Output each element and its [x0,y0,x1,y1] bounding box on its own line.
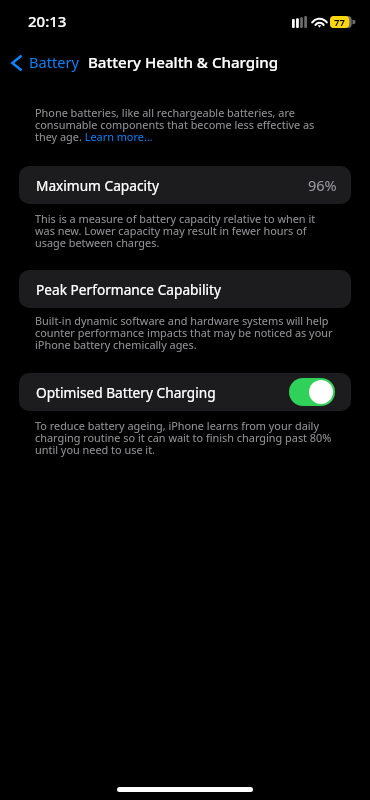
staticText: This is a measure of battery capacity re… [35,211,335,250]
staticText: Peak Performance Capability [36,280,221,299]
staticText: 96% [308,175,337,195]
staticText: Phone batteries, like all rechargeable b… [35,105,335,144]
staticText: 20:13 [28,11,67,31]
staticText: 77 [334,16,345,28]
staticText: Battery Health & Charging [88,52,279,73]
staticText: To reduce battery ageing, iPhone learns … [35,418,335,457]
staticText: Battery [29,52,79,72]
staticText: Maximum Capacity [36,176,159,195]
button[interactable]: Optimised Battery Charging [19,373,351,411]
button[interactable]: Peak Performance Capability [19,270,351,308]
button[interactable]: Battery [11,49,79,75]
button[interactable]: Maximum Capacity [19,166,351,204]
staticText: Optimised Battery Charging [36,383,216,402]
button[interactable]: Optimised Battery Charging toggle [289,378,335,406]
staticText: Built-in dynamic software and hardware s… [35,313,335,352]
